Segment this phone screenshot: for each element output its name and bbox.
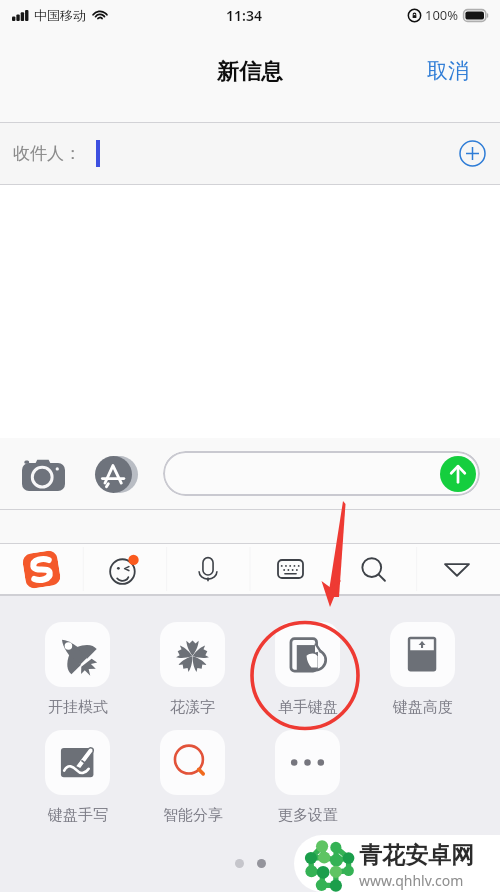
- button[interactable]: Send: [163, 451, 480, 496]
- button[interactable]: 取消: [409, 48, 500, 94]
- staticText: 开挂模式: [48, 698, 108, 717]
- button[interactable]: Emoji: [83, 544, 166, 594]
- button[interactable]: 更多设置: [250, 730, 365, 825]
- staticText: 100%: [425, 6, 459, 24]
- button[interactable]: 键盘手写: [20, 730, 135, 825]
- staticText: www.qhhlv.com: [359, 871, 464, 890]
- staticText: 单手键盘: [278, 698, 338, 717]
- staticText: 更多设置: [278, 806, 338, 825]
- button[interactable]: Search: [332, 544, 415, 594]
- staticText: 取消: [427, 58, 469, 84]
- staticText: 智能分享: [163, 806, 223, 825]
- button[interactable]: Hide keyboard: [415, 544, 498, 594]
- button[interactable]: 单手键盘: [250, 622, 365, 717]
- staticText: 键盘高度: [393, 698, 453, 717]
- staticText: 花漾字: [170, 698, 215, 717]
- staticText: 新信息: [217, 58, 283, 86]
- button[interactable]: App Store: [94, 456, 140, 493]
- button[interactable]: Send: [440, 456, 476, 492]
- button[interactable]: 键盘高度: [365, 622, 480, 717]
- staticText: 中国移动: [34, 7, 86, 23]
- staticText: 收件人：: [13, 143, 81, 164]
- button[interactable]: 智能分享: [135, 730, 250, 825]
- staticText: 青花安卓网: [359, 841, 474, 870]
- button[interactable]: 开挂模式: [20, 622, 135, 717]
- staticText: 键盘手写: [48, 806, 108, 825]
- button[interactable]: Sogou: [0, 544, 83, 594]
- staticText: 11:34: [226, 6, 262, 25]
- button[interactable]: Add contact: [459, 140, 486, 167]
- button[interactable]: 花漾字: [135, 622, 250, 717]
- button[interactable]: Voice input: [166, 544, 249, 594]
- button[interactable]: Camera: [22, 458, 65, 491]
- button[interactable]: Keyboard: [249, 544, 332, 594]
